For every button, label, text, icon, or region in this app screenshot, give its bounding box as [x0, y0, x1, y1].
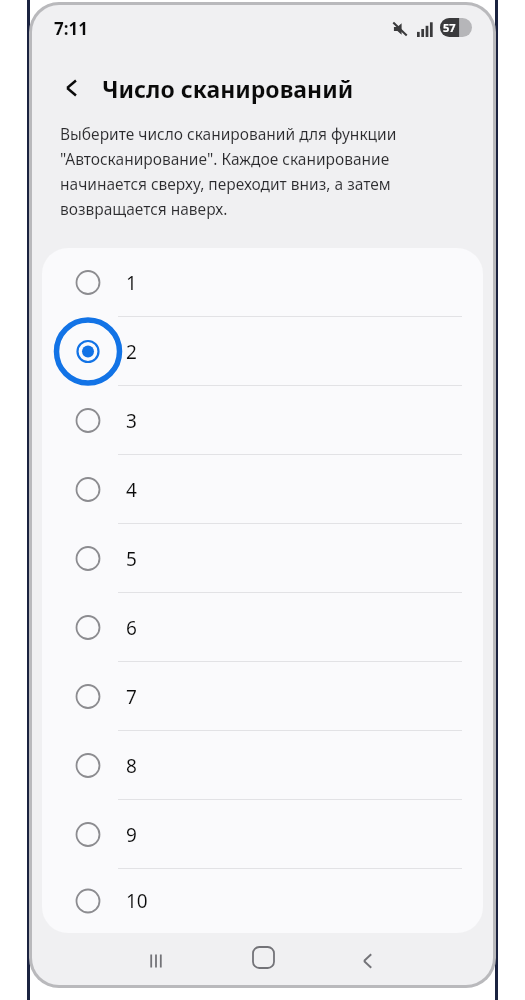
button[interactable]: Back: [52, 68, 92, 108]
button[interactable]: Home: [243, 937, 283, 977]
button[interactable]: 8: [42, 731, 483, 800]
button[interactable]: 9: [42, 800, 483, 869]
button[interactable]: 3: [42, 386, 483, 455]
staticText: 10: [126, 888, 148, 914]
staticText: 1: [126, 270, 137, 296]
staticText: 8: [126, 753, 137, 779]
staticText: 5: [126, 546, 137, 572]
button[interactable]: 10: [42, 869, 483, 933]
button[interactable]: 6: [42, 593, 483, 662]
staticText: Выберите число сканирований для функции …: [60, 123, 450, 219]
staticText: Число сканирований: [102, 73, 354, 104]
staticText: 2: [126, 339, 137, 365]
button[interactable]: 1: [42, 248, 483, 317]
staticText: 6: [126, 615, 137, 641]
staticText: 3: [126, 408, 137, 434]
button[interactable]: 2: [42, 317, 483, 386]
button[interactable]: Recents: [136, 941, 176, 981]
staticText: 9: [126, 822, 137, 848]
staticText: 7: [126, 684, 137, 710]
staticText: 7:11: [54, 17, 88, 40]
staticText: 4: [126, 477, 137, 503]
button[interactable]: 7: [42, 662, 483, 731]
button[interactable]: 4: [42, 455, 483, 524]
button[interactable]: 5: [42, 524, 483, 593]
staticText: 57: [443, 20, 456, 35]
button[interactable]: Back: [348, 941, 388, 981]
